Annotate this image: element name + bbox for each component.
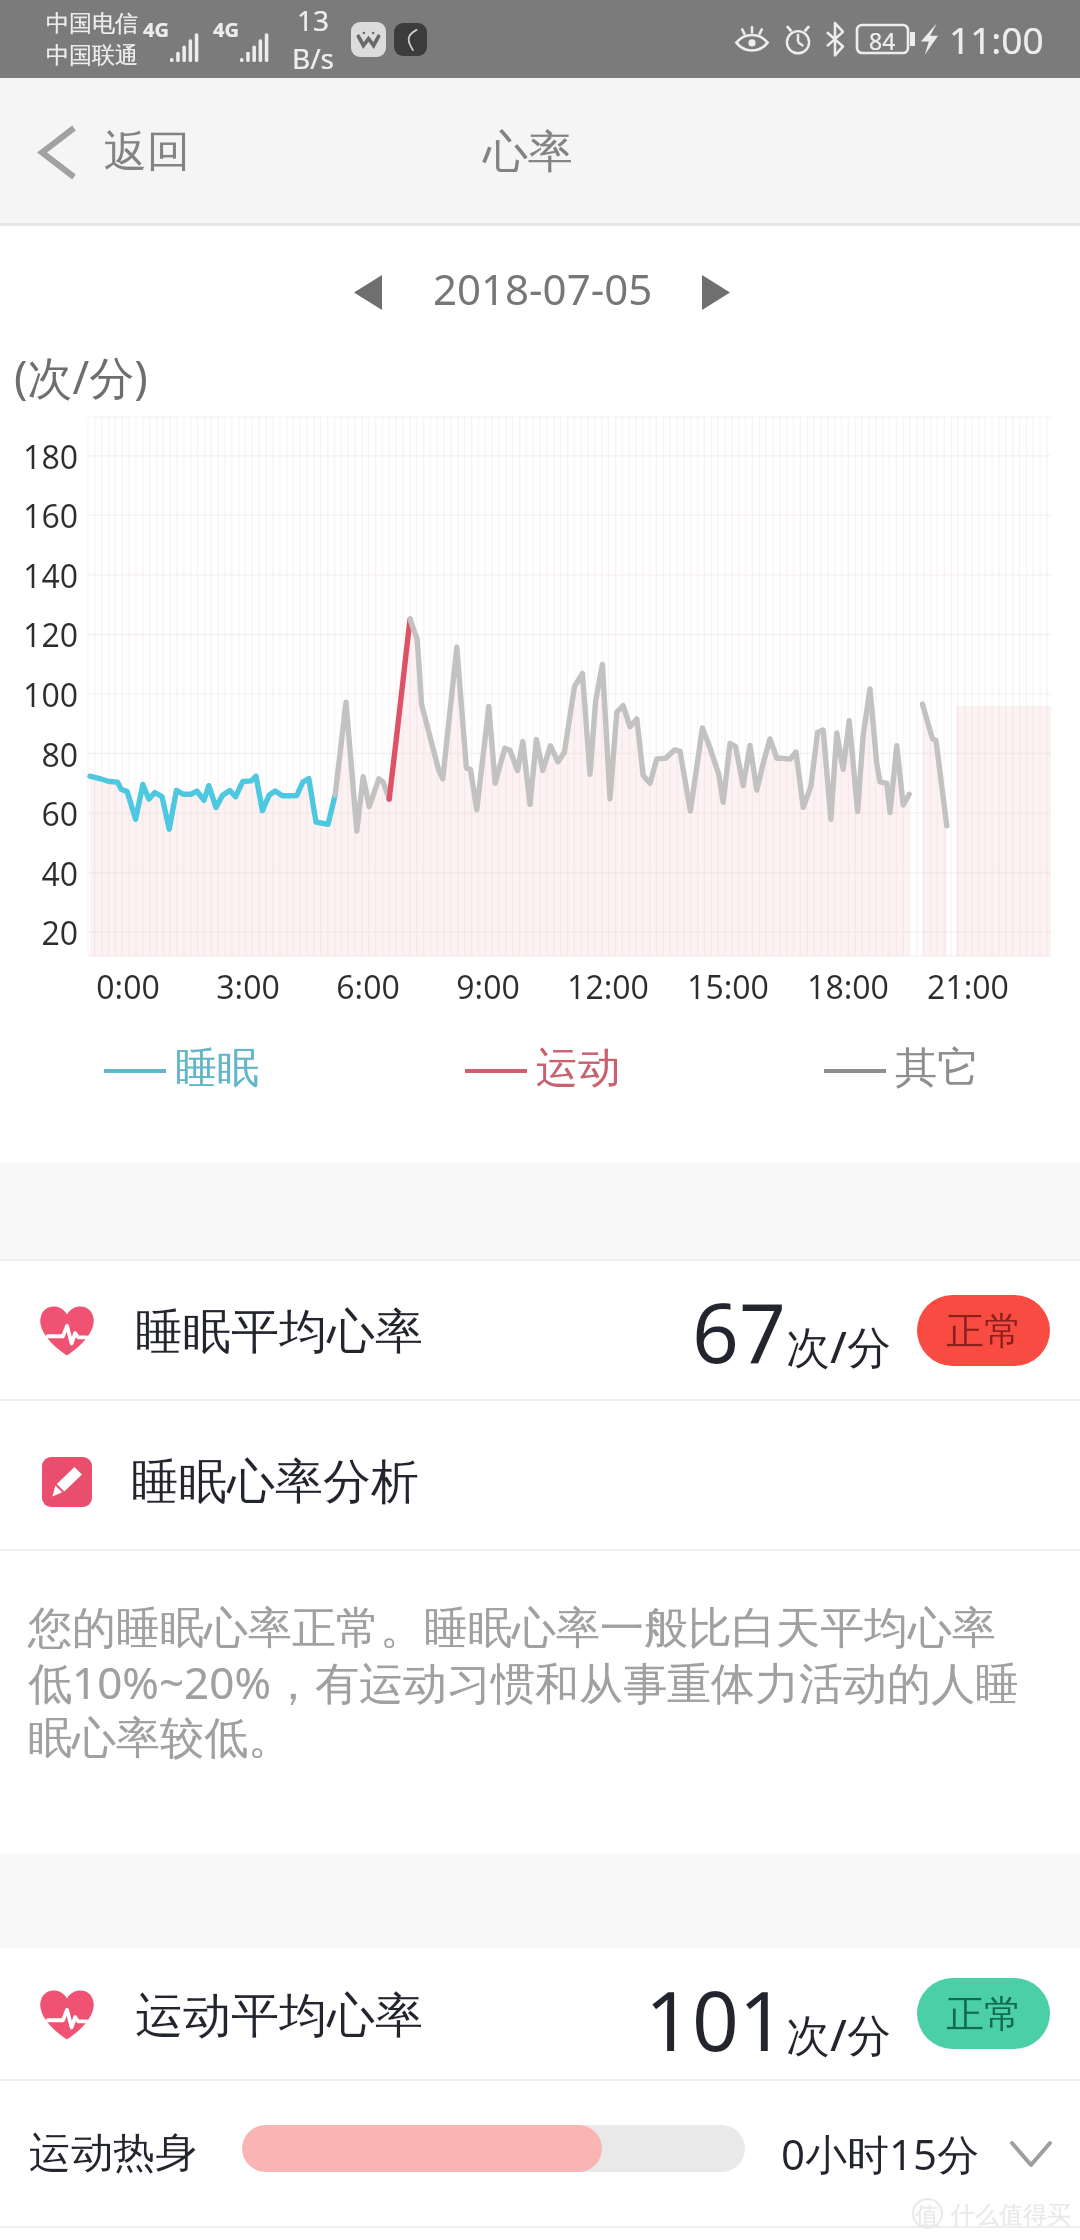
- staticText: 2018-07-05: [433, 260, 653, 317]
- button[interactable]: 睡眠心率分析: [0, 1401, 1080, 1549]
- staticText: 15:00: [658, 965, 798, 1009]
- staticText: 返回: [104, 125, 190, 179]
- staticText: 13: [297, 1, 330, 39]
- staticText: 什么值得买: [951, 2200, 1071, 2230]
- staticText: 睡眠: [175, 1042, 259, 1095]
- staticText: B/s: [292, 39, 335, 77]
- staticText: 160: [0, 494, 78, 538]
- staticText: 0:00: [58, 965, 198, 1009]
- staticText: 6:00: [298, 965, 438, 1009]
- staticText: 次/分: [786, 1316, 891, 1376]
- staticText: 80: [0, 733, 78, 777]
- staticText: 运动平均心率: [135, 1986, 423, 2046]
- button[interactable]: 睡眠平均心率: [0, 1261, 1080, 1399]
- staticText: 12:00: [538, 965, 678, 1009]
- staticText: 101: [645, 1963, 786, 2075]
- staticText: 18:00: [778, 965, 918, 1009]
- staticText: 120: [0, 613, 78, 657]
- staticText: 67: [692, 1275, 786, 1387]
- button[interactable]: 运动热身: [0, 2081, 1080, 2226]
- staticText: 次/分: [786, 2004, 891, 2064]
- button[interactable]: 运动: [465, 1044, 620, 1097]
- staticText: 40: [0, 852, 78, 896]
- staticText: 20: [0, 911, 78, 955]
- staticText: 心率: [483, 124, 573, 181]
- staticText: 0小时15分: [781, 2125, 980, 2182]
- staticText: 运动热身: [29, 2127, 197, 2180]
- staticText: 睡眠平均心率: [135, 1302, 423, 1362]
- button[interactable]: 其它: [824, 1044, 979, 1097]
- staticText: 11:00: [949, 14, 1044, 64]
- staticText: 您的睡眠心率正常。睡眠心率一般比白天平均心率低10%~20%，有运动习惯和从事重…: [28, 1601, 1026, 1766]
- button[interactable]: 返回: [0, 109, 216, 195]
- staticText: 值: [915, 2201, 939, 2231]
- staticText: 60: [0, 792, 78, 836]
- staticText: 140: [0, 554, 78, 598]
- staticText: 180: [0, 435, 78, 479]
- staticText: 3:00: [178, 965, 318, 1009]
- staticText: 4G: [213, 16, 239, 43]
- button[interactable]: Previous day: [330, 263, 406, 322]
- button[interactable]: 睡眠: [104, 1044, 259, 1097]
- staticText: 中国联通: [46, 41, 138, 70]
- staticText: 4G: [143, 16, 169, 43]
- staticText: 21:00: [898, 965, 1038, 1009]
- staticText: 正常: [946, 1990, 1022, 2038]
- staticText: 睡眠心率分析: [131, 1452, 419, 1512]
- staticText: 运动: [536, 1042, 620, 1095]
- staticText: (次/分): [14, 346, 148, 407]
- button[interactable]: 运动平均心率: [0, 1948, 1080, 2079]
- staticText: 9:00: [418, 965, 558, 1009]
- staticText: 正常: [946, 1307, 1022, 1355]
- staticText: 中国电信: [46, 9, 138, 38]
- staticText: 其它: [895, 1042, 979, 1095]
- staticText: 84: [869, 25, 896, 53]
- staticText: 100: [0, 673, 78, 717]
- button[interactable]: Next day: [678, 263, 754, 322]
